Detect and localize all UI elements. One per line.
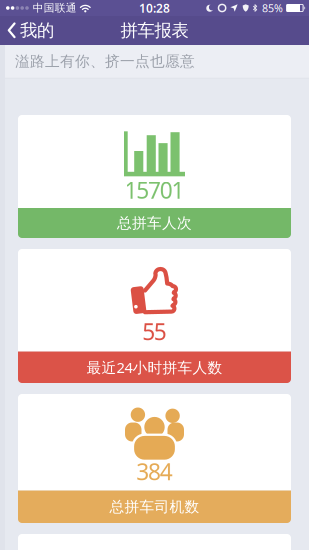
button[interactable]: 返回 我的 [0,20,54,41]
staticText: 总拼车司机数 [109,498,199,516]
staticText: 10:28 [139,0,170,16]
staticText: 384 [136,456,173,487]
staticText: 我的 [20,20,54,41]
button[interactable]: 总拼车人次 [18,208,291,238]
staticText: 总拼车人次 [117,214,192,232]
staticText: 55 [142,316,167,347]
staticText: 85% [262,1,283,15]
staticText: 溢路上有你、挤一点也愿意 [15,52,195,70]
staticText: 最近24小时拼车人数 [86,357,222,377]
staticText: 拼车报表 [120,20,188,41]
button[interactable]: 最近24小时拼车人数 [18,351,291,383]
staticText: 15701 [125,175,184,205]
button[interactable]: 总拼车司机数 [18,490,291,523]
staticText: 中国联通 [33,1,77,14]
